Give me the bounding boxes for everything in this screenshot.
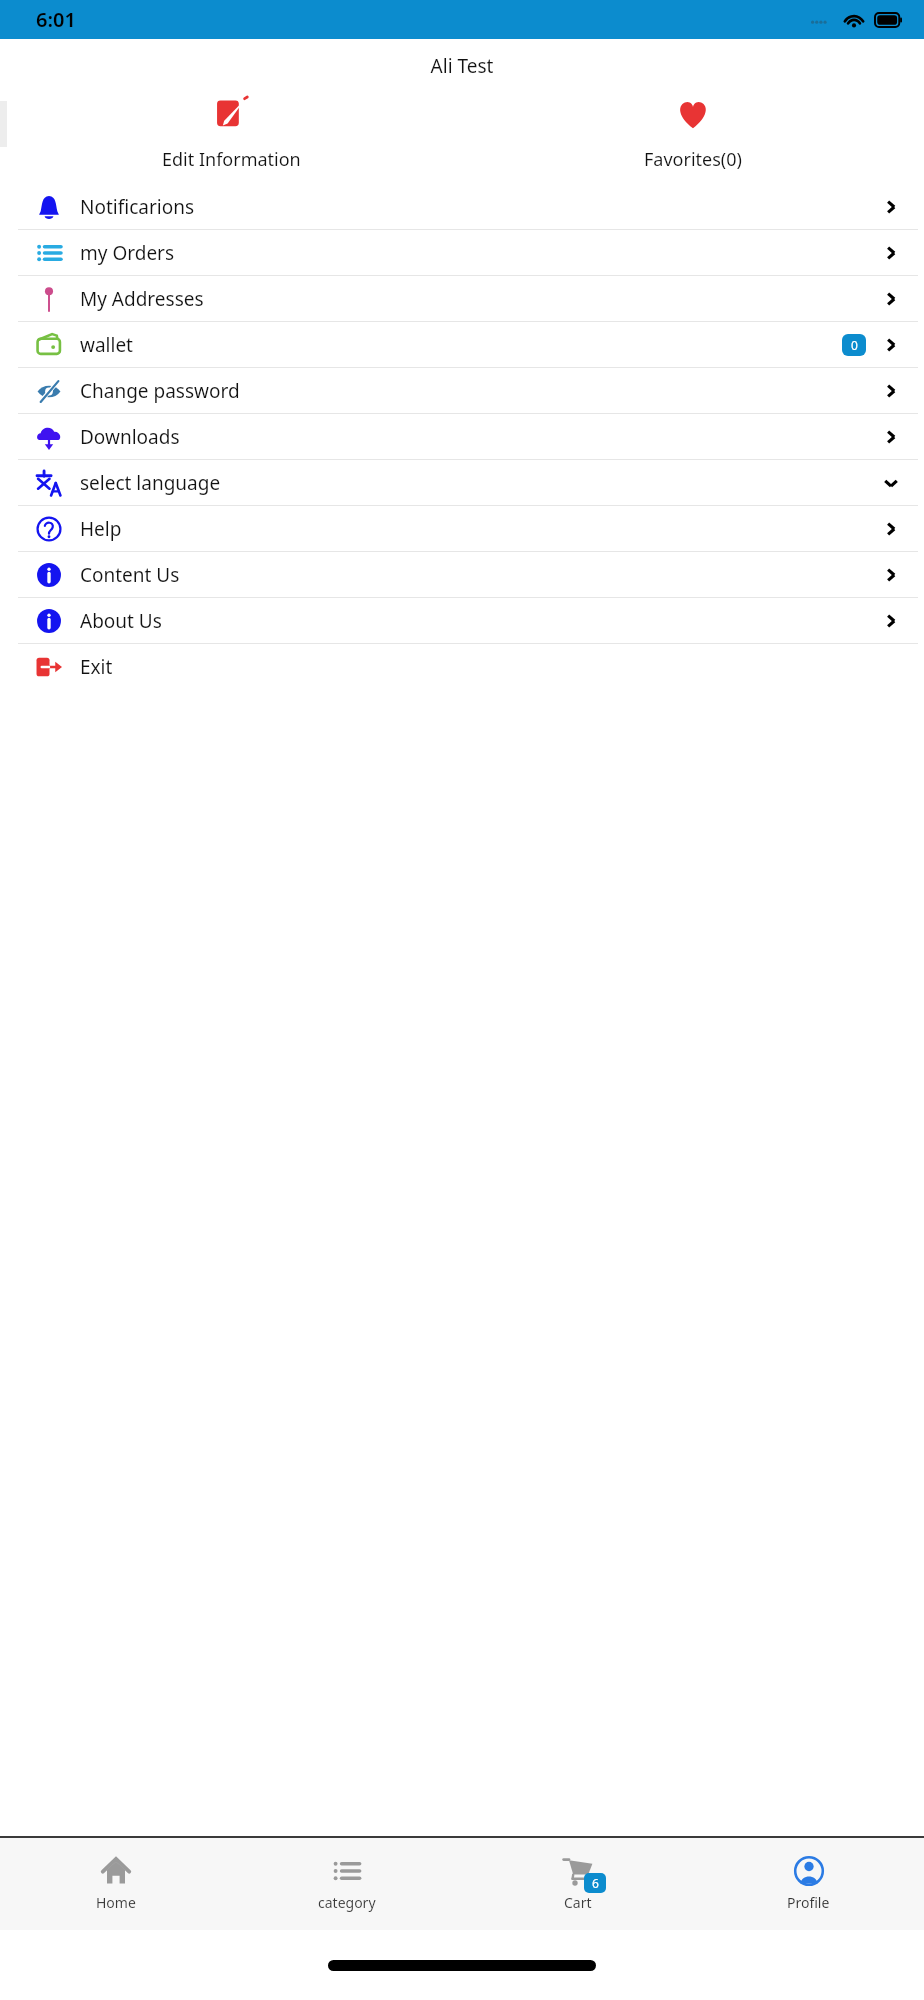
staticText: Ali Test (0, 53, 924, 79)
staticText: My Addresses (80, 286, 882, 312)
button[interactable]: Favorites(0) (462, 97, 924, 172)
staticText: category (318, 1893, 376, 1912)
button[interactable]: Help (0, 506, 924, 551)
staticText: Home (96, 1893, 136, 1912)
staticText: wallet (80, 332, 842, 358)
staticText: my Orders (80, 240, 882, 266)
staticText: About Us (80, 608, 882, 634)
button[interactable]: About Us (0, 598, 924, 643)
staticText: Edit Information (162, 147, 301, 172)
button[interactable]: Exit (0, 644, 924, 689)
staticText: Profile (787, 1893, 830, 1912)
button[interactable]: select language (0, 460, 924, 505)
button[interactable]: category (231, 1838, 462, 1930)
staticText: Help (80, 516, 882, 542)
staticText: 0 (851, 337, 858, 353)
button[interactable]: my Orders (0, 230, 924, 275)
button[interactable]: 6 (462, 1838, 693, 1930)
button[interactable]: Home (0, 1838, 231, 1930)
staticText: Downloads (80, 424, 882, 450)
staticText: Notificarions (80, 194, 882, 220)
button[interactable]: Downloads (0, 414, 924, 459)
button[interactable]: Profile (693, 1838, 924, 1930)
staticText: Change password (80, 378, 882, 404)
staticText: 6:01 (36, 6, 76, 33)
button[interactable]: My Addresses (0, 276, 924, 321)
button[interactable]: Edit Information (0, 97, 462, 172)
button[interactable]: Change password (0, 368, 924, 413)
staticText: Favorites(0) (644, 147, 742, 172)
staticText: select language (80, 470, 882, 496)
button[interactable]: Content Us (0, 552, 924, 597)
staticText: Content Us (80, 562, 882, 588)
staticText: Cart (564, 1893, 592, 1912)
button[interactable]: Notificarions (0, 184, 924, 229)
button[interactable]: wallet (0, 322, 924, 367)
staticText: Exit (80, 654, 900, 680)
staticText: 6 (592, 1875, 599, 1891)
